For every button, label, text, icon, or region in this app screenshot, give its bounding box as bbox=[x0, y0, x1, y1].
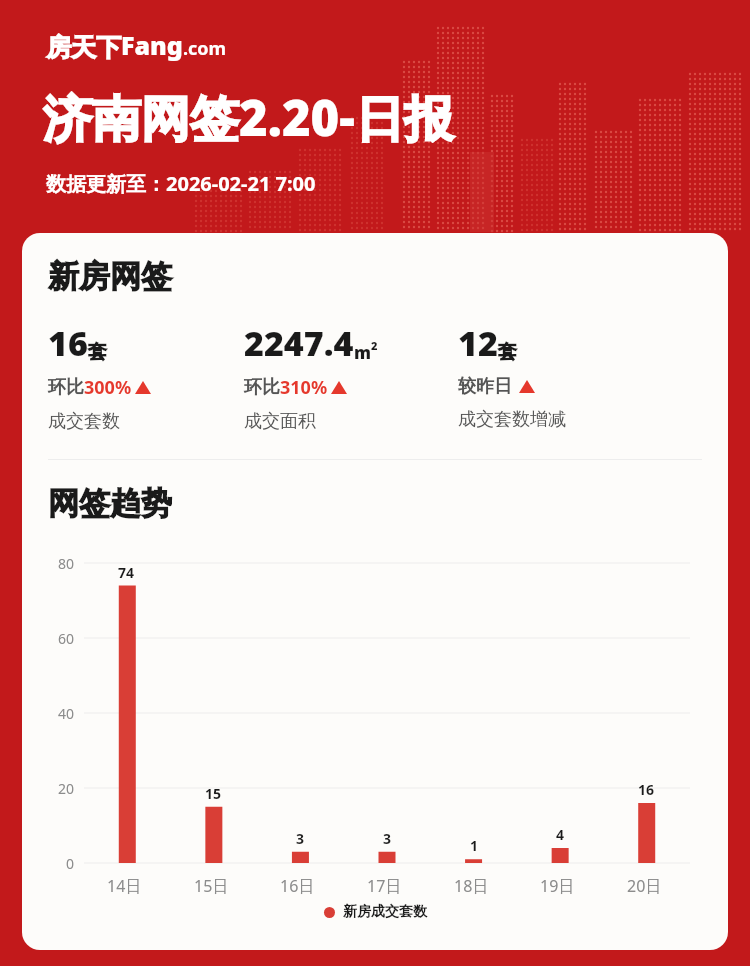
staticText: 15 bbox=[205, 784, 222, 803]
staticText: 套 bbox=[498, 340, 517, 364]
button[interactable]: 新房成交套数 bbox=[22, 903, 728, 921]
staticText: 2 bbox=[371, 338, 378, 353]
staticText: 19日 bbox=[540, 875, 575, 897]
staticText: 0 bbox=[66, 854, 75, 873]
staticText: 新房成交套数 bbox=[343, 903, 427, 921]
staticText: 14日 bbox=[107, 875, 142, 897]
staticText: 60 bbox=[58, 629, 75, 648]
staticText: 15日 bbox=[194, 875, 229, 897]
staticText: 成交面积 bbox=[244, 410, 316, 433]
staticText: 3 bbox=[296, 829, 305, 848]
staticText: 环比 bbox=[244, 376, 280, 399]
button[interactable]: 2247.4 bbox=[244, 320, 458, 433]
staticText: 4 bbox=[556, 825, 565, 844]
staticText: Fang bbox=[121, 28, 183, 62]
staticText: 16 bbox=[48, 320, 88, 366]
staticText: 40 bbox=[58, 704, 75, 723]
staticText: 80 bbox=[58, 554, 75, 573]
staticText: m bbox=[354, 341, 371, 364]
staticText: 16日 bbox=[280, 875, 315, 897]
staticText: 20日 bbox=[627, 875, 662, 897]
staticText: 新房网签 bbox=[48, 257, 172, 296]
staticText: 1 bbox=[470, 836, 479, 855]
staticText: 网签趋势 bbox=[48, 484, 172, 523]
staticText: 17日 bbox=[367, 875, 402, 897]
staticText: 12 bbox=[458, 320, 498, 366]
staticText: 74 bbox=[118, 563, 135, 582]
staticText: 环比 bbox=[48, 376, 84, 399]
staticText: 16 bbox=[638, 780, 655, 799]
button[interactable]: 房天下 Fang.com 首页 bbox=[46, 29, 227, 63]
staticText: 2247.4 bbox=[244, 320, 354, 366]
staticText: 成交套数 bbox=[48, 410, 120, 433]
staticText: 20 bbox=[58, 779, 75, 798]
staticText: 数据更新至：2026-02-21 7:00 bbox=[46, 170, 316, 197]
staticText: 套 bbox=[88, 340, 107, 364]
staticText: 房天下 bbox=[46, 32, 121, 63]
staticText: 300% bbox=[84, 375, 132, 400]
staticText: 较昨日 bbox=[458, 375, 512, 398]
button[interactable]: 16 bbox=[48, 320, 244, 433]
staticText: 3 bbox=[383, 829, 392, 848]
staticText: 成交套数增减 bbox=[458, 408, 566, 431]
staticText: .com bbox=[183, 36, 227, 61]
staticText: 18日 bbox=[454, 875, 489, 897]
staticText: 310% bbox=[280, 375, 328, 400]
button[interactable]: 12 bbox=[458, 320, 678, 431]
staticText: 济南网签2.20-日报 bbox=[43, 84, 453, 151]
